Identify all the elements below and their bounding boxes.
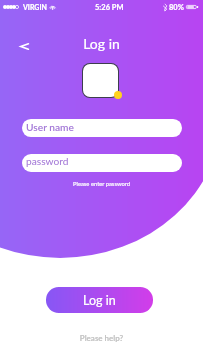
- button[interactable]: Back: [13, 35, 35, 57]
- staticText: Log in: [0, 35, 203, 52]
- staticText: 5:26 PM: [95, 3, 124, 12]
- staticText: Please enter password: [0, 180, 203, 187]
- button[interactable]: Please help?: [0, 333, 203, 343]
- staticText: VIRGIN: [23, 3, 47, 11]
- button[interactable]: password: [22, 154, 182, 172]
- button[interactable]: User name: [22, 119, 182, 137]
- staticText: User name: [26, 121, 74, 133]
- button[interactable]: Log in: [46, 287, 153, 313]
- staticText: Log in: [83, 293, 116, 308]
- staticText: password: [26, 155, 69, 167]
- staticText: 80%: [169, 3, 184, 12]
